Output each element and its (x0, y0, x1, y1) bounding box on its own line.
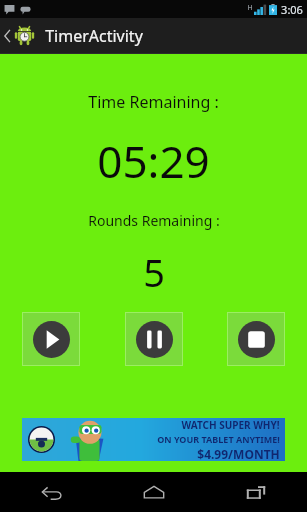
staticText: H (247, 3, 253, 13)
button[interactable]: Start (22, 312, 80, 366)
staticText: 05:29 (97, 131, 210, 191)
button[interactable]: Recent apps (205, 472, 307, 512)
staticText: ON YOUR TABLET ANYTIME! (157, 433, 280, 445)
button[interactable]: Advertisement: Watch Super Why on your t… (22, 418, 285, 461)
button[interactable]: Pause (125, 312, 183, 366)
button[interactable]: Back (0, 472, 103, 512)
button[interactable]: Stop (227, 312, 285, 366)
staticText: TimerActivity (45, 25, 143, 47)
staticText: WATCH SUPER WHY! (181, 418, 280, 432)
staticText: 3:06 (281, 2, 303, 17)
staticText: Time Remaining : (88, 91, 219, 113)
staticText: $4.99/MONTH (197, 446, 280, 461)
button[interactable]: Home (103, 472, 205, 512)
staticText: Rounds Remaining : (88, 211, 220, 230)
button[interactable]: Navigate up (0, 21, 37, 50)
staticText: 5 (143, 246, 165, 298)
